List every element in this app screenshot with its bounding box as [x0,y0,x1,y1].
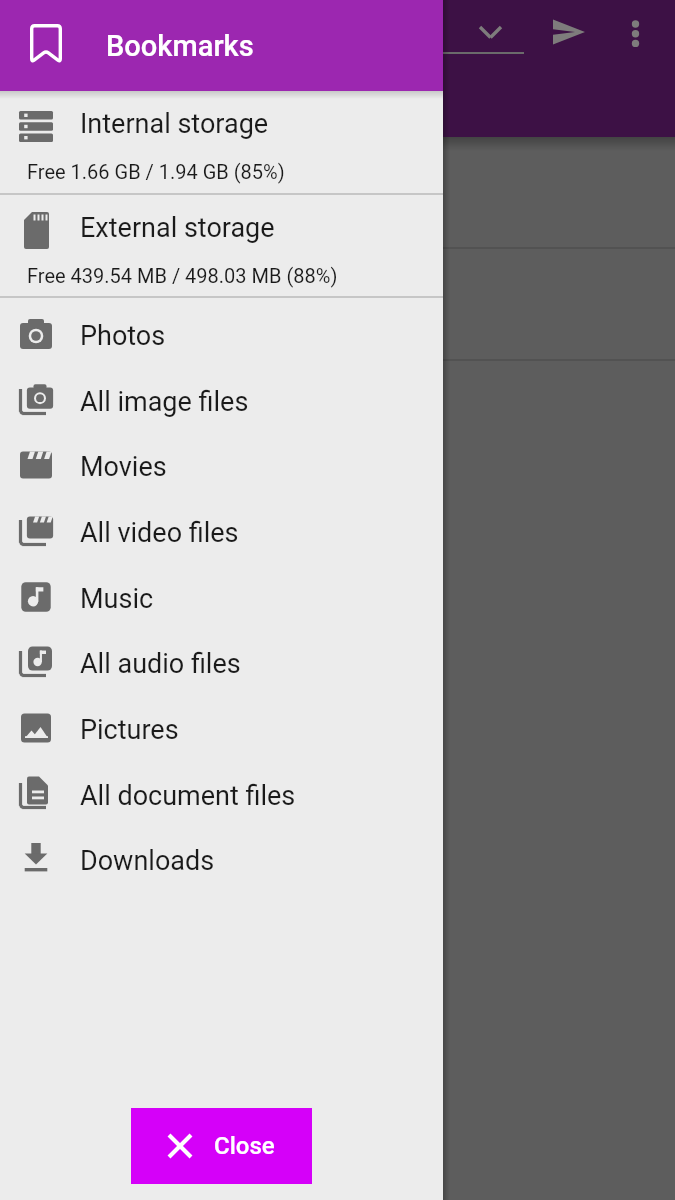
staticText: All audio files [80,648,241,680]
button[interactable]: Photos [0,301,443,367]
button[interactable]: All image files [0,367,443,433]
button[interactable]: Internal storage [0,91,443,194]
staticText: All document files [80,780,296,812]
staticText: Bookmarks [106,29,254,63]
button[interactable]: Pictures [0,695,443,761]
button[interactable]: All audio files [0,629,443,695]
staticText: All image files [80,386,249,418]
staticText: Photos [80,320,166,352]
button[interactable]: Music [0,564,443,630]
staticText: Close [214,1132,275,1160]
staticText: External storage [80,212,275,244]
button[interactable]: Movies [0,432,443,498]
staticText: Pictures [80,714,179,746]
button[interactable]: All document files [0,761,443,827]
staticText: Free 1.66 GB / 1.94 GB (85%) [27,160,285,183]
button[interactable]: Bookmarks [0,0,443,91]
staticText: Free 439.54 MB / 498.03 MB (88%) [27,264,338,287]
staticText: Internal storage [80,108,269,140]
button[interactable]: Downloads [0,826,443,892]
button[interactable]: All video files [0,498,443,564]
button[interactable]: Close [131,1108,312,1184]
staticText: All video files [80,517,239,549]
staticText: Downloads [80,845,215,877]
staticText: Movies [80,451,167,483]
button[interactable]: External storage [0,195,443,298]
staticText: Music [80,583,154,615]
